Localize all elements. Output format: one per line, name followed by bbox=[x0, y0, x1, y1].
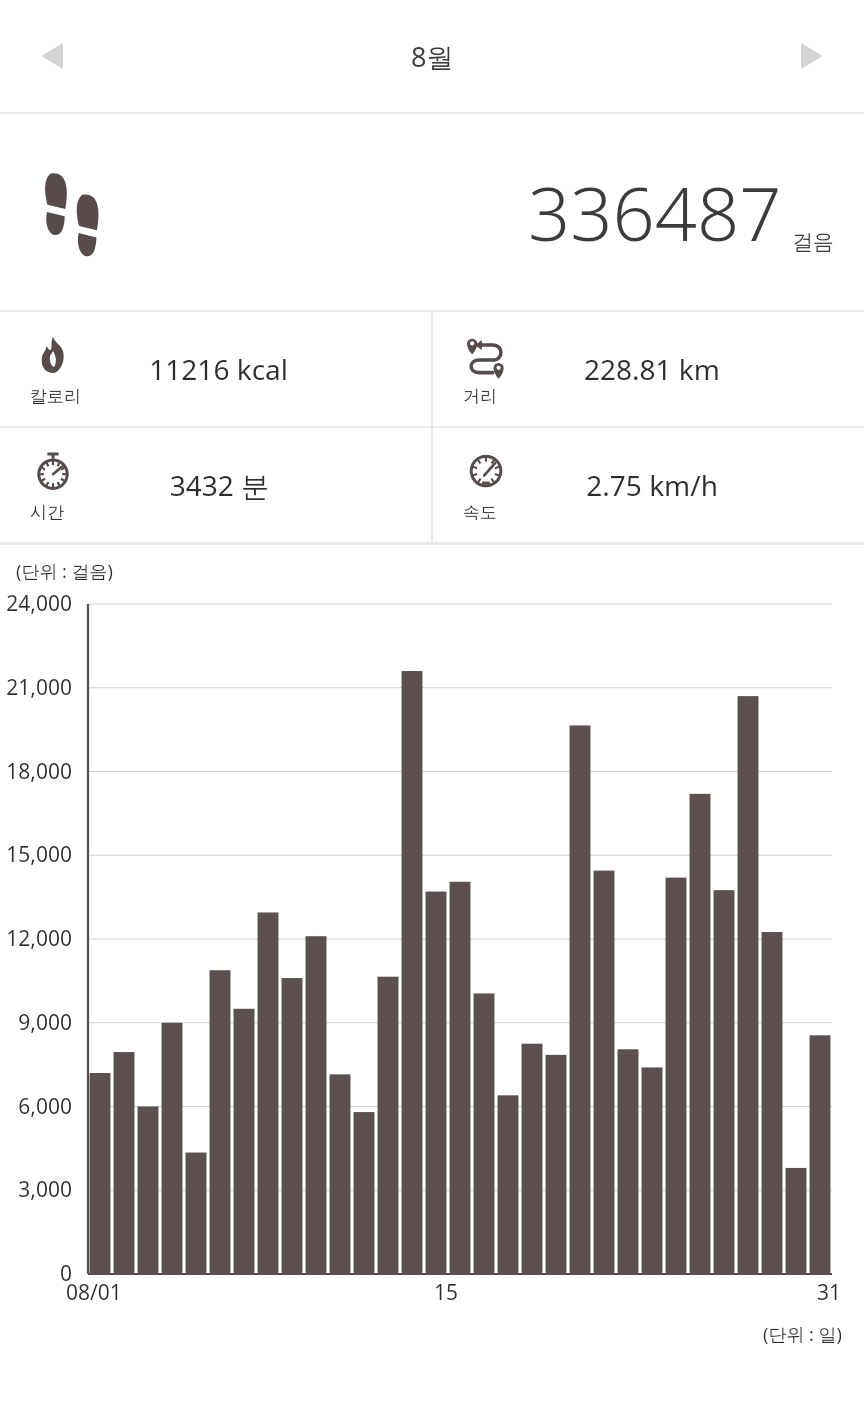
staticText: 11216 kcal bbox=[149, 350, 288, 388]
staticText: 거리 bbox=[463, 386, 497, 407]
button[interactable]: Previous month bbox=[20, 22, 88, 90]
staticText: 12,000 bbox=[0, 924, 72, 953]
staticText: 6,000 bbox=[0, 1092, 72, 1121]
staticText: 8월 bbox=[411, 38, 454, 75]
staticText: 3432 분 bbox=[169, 466, 269, 504]
staticText: (단위 : 일) bbox=[763, 1322, 842, 1347]
staticText: 시간 bbox=[30, 502, 64, 523]
staticText: 228.81 km bbox=[584, 350, 720, 388]
staticText: 걸음 bbox=[792, 229, 834, 255]
staticText: 9,000 bbox=[0, 1008, 72, 1037]
staticText: 21,000 bbox=[0, 673, 72, 702]
staticText: 속도 bbox=[463, 502, 497, 523]
button[interactable]: 시간 bbox=[0, 428, 431, 542]
staticText: 2.75 km/h bbox=[586, 466, 718, 504]
staticText: 08/01 bbox=[66, 1278, 122, 1307]
staticText: 15,000 bbox=[0, 840, 72, 869]
button[interactable]: 336487 bbox=[0, 114, 864, 310]
button[interactable]: 칼로리 bbox=[0, 312, 431, 426]
button[interactable]: 거리 bbox=[433, 312, 864, 426]
staticText: 336487 bbox=[528, 162, 782, 263]
staticText: (단위 : 걸음) bbox=[16, 559, 113, 584]
button[interactable]: 속도 bbox=[433, 428, 864, 542]
staticText: 18,000 bbox=[0, 757, 72, 786]
staticText: 칼로리 bbox=[30, 386, 81, 407]
staticText: 31 bbox=[817, 1278, 842, 1307]
staticText: 3,000 bbox=[0, 1175, 72, 1204]
staticText: 0 bbox=[0, 1259, 72, 1288]
button[interactable]: Next month bbox=[776, 22, 844, 90]
staticText: 24,000 bbox=[0, 589, 72, 618]
staticText: 15 bbox=[434, 1278, 459, 1307]
